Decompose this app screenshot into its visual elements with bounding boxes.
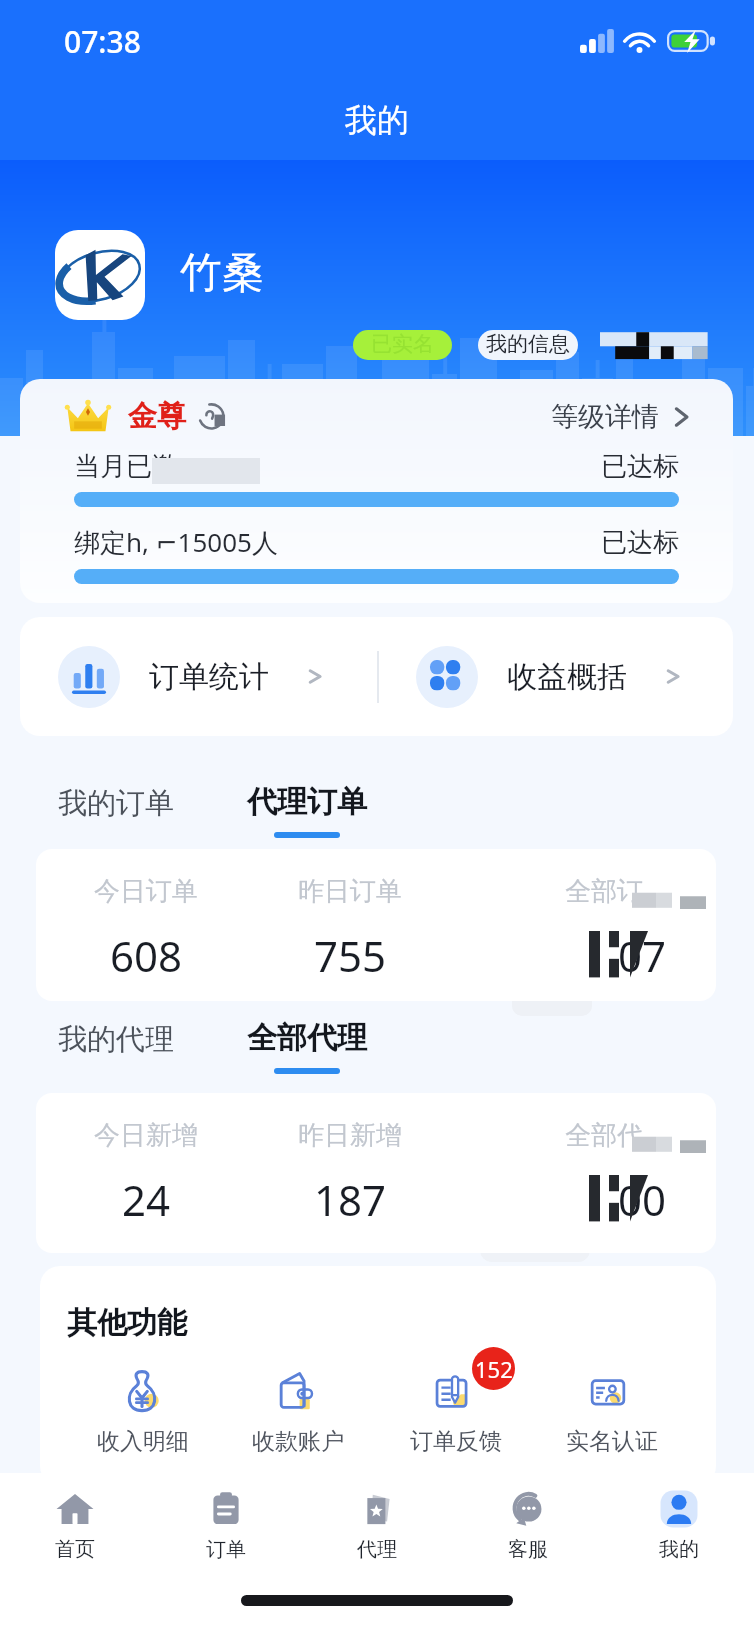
button[interactable]: 已实名 xyxy=(353,330,452,360)
staticText: 订单 xyxy=(206,1537,246,1562)
button[interactable]: 今日新增 xyxy=(36,1093,716,1253)
staticText: 订单反馈 xyxy=(410,1427,502,1456)
staticText: 187 xyxy=(314,1171,387,1228)
staticText: 绑定h, ⌐15005人 xyxy=(74,524,278,560)
button[interactable]: 订单反馈 xyxy=(381,1352,531,1462)
staticText: 07:38 xyxy=(64,21,141,62)
staticText: 已实名 xyxy=(371,331,434,357)
staticText: 已达标 xyxy=(601,450,679,483)
staticText: 订单统计 xyxy=(149,658,269,696)
staticText: 金尊 xyxy=(128,398,186,435)
staticText: 我的订单 xyxy=(58,785,174,822)
staticText: 我的 xyxy=(659,1537,699,1562)
button[interactable]: 订单统计 xyxy=(58,617,358,736)
staticText: 代理订单 xyxy=(247,783,367,821)
staticText: 07 xyxy=(618,927,667,984)
staticText: 昨日新增 xyxy=(298,1119,402,1152)
staticText: 昨日订单 xyxy=(298,875,402,908)
staticText: 我的信息 xyxy=(486,331,570,357)
staticText: 全部代 xyxy=(565,1119,643,1152)
button[interactable]: 订单 xyxy=(150,1473,301,1577)
button[interactable]: 我的代理 xyxy=(44,1014,188,1065)
button[interactable]: 金尊 xyxy=(20,379,733,603)
staticText: 我的 xyxy=(345,100,409,140)
staticText: 我的代理 xyxy=(58,1021,174,1058)
staticText: 首页 xyxy=(55,1537,95,1562)
staticText: 755 xyxy=(314,927,387,984)
staticText: 收益概括 xyxy=(507,658,627,696)
button[interactable]: 我的订单 xyxy=(44,778,188,829)
staticText: 实名认证 xyxy=(566,1427,658,1456)
staticText: 客服 xyxy=(508,1537,548,1562)
staticText: 代理 xyxy=(357,1537,397,1562)
button[interactable]: 代理订单 xyxy=(233,778,381,838)
staticText: 608 xyxy=(110,927,183,984)
button[interactable]: Profile avatar xyxy=(55,230,145,320)
staticText: 收入明细 xyxy=(97,1427,189,1456)
staticText: 152 xyxy=(475,1354,513,1384)
staticText: 竹桑 xyxy=(180,247,264,300)
button[interactable]: 首页 xyxy=(0,1473,150,1577)
staticText: 全部代理 xyxy=(247,1019,367,1057)
button[interactable]: 客服 xyxy=(452,1473,603,1577)
staticText: 收款账户 xyxy=(252,1427,344,1456)
button[interactable]: 我的信息 xyxy=(478,330,578,360)
button[interactable]: 实名认证 xyxy=(537,1352,687,1462)
button[interactable]: 今日订单 xyxy=(36,849,716,1001)
staticText: 全部订 xyxy=(565,875,643,908)
button[interactable]: 收款账户 xyxy=(223,1352,373,1462)
staticText: 00 xyxy=(618,1171,667,1228)
staticText: 今日新增 xyxy=(94,1119,198,1152)
button[interactable]: 我的 xyxy=(603,1473,754,1577)
staticText: 当月已激 xyxy=(74,450,178,483)
button[interactable]: 收入明细 xyxy=(68,1352,218,1462)
staticText: 等级详情 xyxy=(551,400,659,434)
button[interactable]: 收益概括 xyxy=(416,617,716,736)
staticText: 已达标 xyxy=(601,526,679,559)
staticText: 今日订单 xyxy=(94,875,198,908)
staticText: 24 xyxy=(122,1171,171,1228)
button[interactable]: 代理 xyxy=(301,1473,452,1577)
staticText: 其他功能 xyxy=(67,1304,187,1342)
button[interactable]: 全部代理 xyxy=(233,1014,381,1074)
